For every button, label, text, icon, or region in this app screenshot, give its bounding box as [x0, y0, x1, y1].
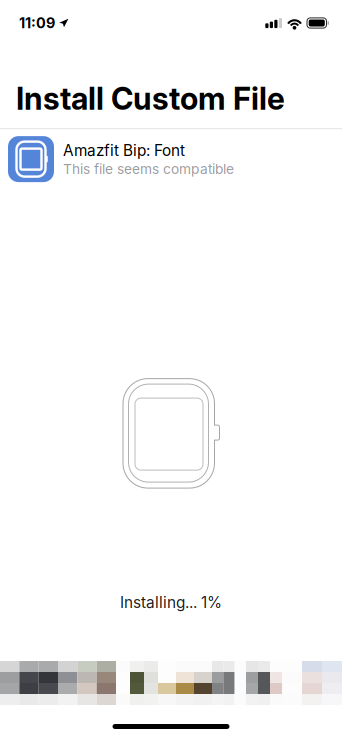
- staticText: 11:09: [19, 14, 55, 32]
- staticText: Install Custom File: [16, 80, 285, 117]
- staticText: This file seems compatible: [63, 161, 234, 177]
- staticText: Installing... 1%: [120, 593, 222, 612]
- staticText: Amazfit Bip: Font: [63, 141, 185, 160]
- button[interactable]: Amazfit Bip: Font: [0, 129, 342, 182]
